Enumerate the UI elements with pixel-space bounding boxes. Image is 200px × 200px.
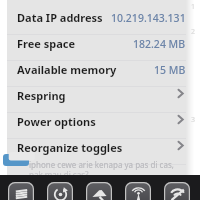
button[interactable]: Wi-Fi off — [164, 182, 190, 200]
button[interactable]: Data IP address — [7, 9, 187, 35]
staticText: 3 — [191, 115, 196, 125]
button[interactable]: Free space — [7, 35, 187, 61]
button[interactable]: Reorganize toggles — [7, 139, 187, 165]
button[interactable]: Cellular data — [125, 182, 151, 200]
staticText: iphone cewe arie kenapa ya pas di cas, — [29, 159, 174, 170]
staticText: 15 MB — [154, 63, 186, 77]
button[interactable]: Rotation lock — [47, 182, 73, 200]
staticText: Data IP address — [17, 10, 103, 25]
button[interactable]: Airplane mode — [86, 182, 112, 200]
staticText: Power options — [17, 114, 96, 129]
staticText: 182.24 MB — [133, 37, 186, 51]
button[interactable]: Activator — [8, 182, 34, 200]
staticText: Respring — [17, 88, 66, 103]
staticText: 1 — [191, 2, 196, 12]
staticText: Free space — [17, 36, 76, 51]
staticText: 2 — [191, 27, 196, 37]
staticText: 10.219.143.131 — [111, 11, 186, 25]
staticText: pak mau di cas? — [29, 169, 89, 180]
button[interactable]: Power options — [7, 113, 187, 139]
staticText: Reorganize toggles — [17, 140, 123, 155]
button[interactable]: Available memory — [7, 61, 187, 87]
staticText: Available memory — [17, 62, 117, 77]
button[interactable]: Respring — [7, 87, 187, 113]
